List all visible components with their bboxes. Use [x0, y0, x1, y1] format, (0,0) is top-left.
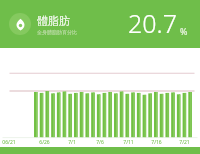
button[interactable]: Body fat	[0, 0, 200, 48]
staticText: %	[180, 25, 188, 37]
staticText: 20.7	[128, 6, 177, 40]
staticText: 7/21	[179, 139, 190, 146]
staticText: 7/1	[68, 139, 76, 146]
staticText: 06/21	[2, 139, 16, 146]
staticText: 7/11	[123, 139, 134, 146]
staticText: 6/26	[39, 139, 50, 146]
staticText: 全身體脂肪百分比	[37, 29, 77, 35]
staticText: 7/16	[151, 139, 162, 146]
button[interactable]: 06/21	[0, 48, 200, 147]
staticText: 體脂肪	[37, 14, 70, 28]
staticText: 7/6	[96, 139, 104, 146]
other: Body fat	[9, 13, 31, 35]
